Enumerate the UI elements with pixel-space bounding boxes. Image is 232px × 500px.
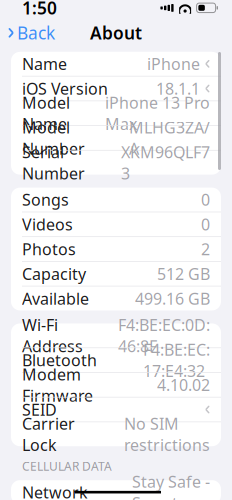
button[interactable]: Model Name — [11, 101, 221, 125]
button[interactable]: Available — [11, 286, 221, 310]
staticText: 2 — [201, 238, 210, 260]
staticText: Name — [22, 53, 67, 74]
staticText: Modem Firmware — [22, 364, 93, 406]
staticText: Available — [22, 288, 89, 309]
staticText: iPhone — [147, 53, 200, 74]
staticText: 0 — [201, 214, 210, 235]
staticText: iPhone 13 Pro Max — [105, 92, 210, 134]
staticText: Serial Number — [22, 141, 85, 184]
button[interactable]: Capacity — [11, 262, 221, 286]
button[interactable]: iOS Version — [11, 76, 221, 100]
staticText: iOS Version — [22, 78, 108, 99]
staticText: Network — [22, 481, 88, 500]
staticText: SEID — [22, 399, 57, 420]
staticText: Videos — [22, 214, 73, 235]
staticText: Photos — [22, 238, 76, 260]
staticText: Wi-Fi Address — [22, 314, 83, 357]
button[interactable]: Name — [11, 52, 221, 76]
button[interactable]: Serial Number — [11, 151, 221, 175]
staticText: F4:BE:EC:17:E4:32 — [143, 339, 210, 381]
staticText: Model Number — [22, 117, 85, 159]
button[interactable]: Songs — [11, 188, 221, 212]
button[interactable]: Photos — [11, 237, 221, 261]
button[interactable]: Network — [11, 480, 221, 500]
staticText: Capacity — [22, 263, 86, 284]
button[interactable]: Back — [0, 20, 63, 46]
staticText: Bluetooth — [22, 349, 97, 371]
staticText: About — [90, 21, 142, 44]
staticText: Songs — [22, 189, 69, 210]
staticText: 512 GB — [157, 263, 210, 284]
staticText: Back — [17, 21, 55, 44]
staticText: Carrier Lock — [22, 413, 75, 455]
button[interactable]: Model Number — [11, 126, 221, 150]
staticText: Stay Safe - Smart — [132, 471, 210, 500]
staticText: MLHG3ZA/A — [129, 117, 210, 159]
staticText: F4:BE:EC:0D:46:8F — [118, 314, 210, 357]
staticText: CELLULAR DATA — [22, 458, 112, 474]
button[interactable]: Wi-Fi Address — [11, 323, 221, 347]
staticText: XKM96QLF73 — [121, 141, 210, 184]
button[interactable]: Bluetooth — [11, 348, 221, 372]
staticText: 0 — [201, 189, 210, 210]
staticText: 18.1.1 — [156, 78, 200, 99]
staticText: No SIM restrictions — [124, 413, 210, 455]
staticText: 4.10.02 — [157, 374, 210, 395]
button[interactable]: Carrier Lock — [11, 422, 221, 446]
button[interactable]: SEID — [11, 397, 221, 421]
button[interactable]: Modem Firmware — [11, 373, 221, 397]
staticText: 499.16 GB — [135, 288, 210, 309]
staticText: Model Name — [22, 92, 70, 134]
staticText: 1:50 — [22, 0, 57, 19]
button[interactable]: Videos — [11, 212, 221, 236]
